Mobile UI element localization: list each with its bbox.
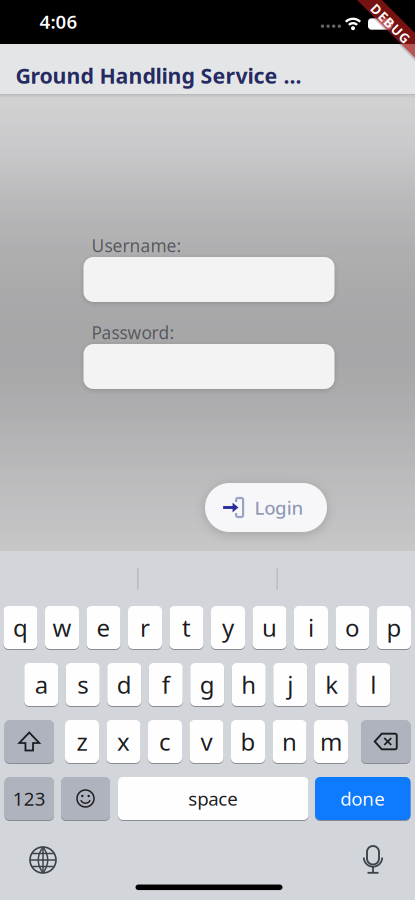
staticText: i bbox=[308, 612, 314, 643]
button[interactable]: i bbox=[294, 605, 328, 649]
button[interactable]: s bbox=[66, 662, 100, 706]
button[interactable]: o bbox=[335, 605, 369, 649]
staticText: v bbox=[200, 726, 212, 757]
button[interactable]: Emoji bbox=[61, 776, 110, 820]
staticText: Username: bbox=[91, 234, 181, 257]
staticText: e bbox=[96, 612, 110, 643]
staticText: y bbox=[222, 612, 234, 643]
staticText: D E B U G bbox=[365, 15, 415, 32]
staticText: w bbox=[52, 612, 71, 643]
button[interactable]: a bbox=[24, 662, 58, 706]
staticText: Password: bbox=[91, 321, 174, 344]
button[interactable]: f bbox=[149, 662, 183, 706]
staticText: u bbox=[262, 612, 277, 643]
staticText: b bbox=[240, 726, 255, 757]
staticText: c bbox=[159, 726, 171, 757]
button[interactable]: u bbox=[252, 605, 286, 649]
button[interactable]: d bbox=[107, 662, 141, 706]
staticText: g bbox=[200, 669, 215, 700]
button[interactable]: Delete bbox=[361, 719, 410, 763]
button[interactable]: z bbox=[65, 719, 99, 763]
staticText: Login bbox=[255, 495, 303, 520]
button[interactable]: g bbox=[190, 662, 224, 706]
staticText: l bbox=[370, 669, 376, 700]
button[interactable]: 123 bbox=[4, 776, 54, 820]
staticText: s bbox=[77, 669, 88, 700]
staticText: done bbox=[340, 786, 385, 811]
staticText: q bbox=[13, 612, 28, 643]
button[interactable]: Dictation bbox=[363, 845, 383, 874]
button[interactable]: x bbox=[106, 719, 140, 763]
button[interactable]: l bbox=[356, 662, 390, 706]
button[interactable]: p bbox=[377, 605, 411, 649]
button[interactable]: Username bbox=[83, 257, 334, 302]
staticText: x bbox=[117, 726, 130, 757]
button[interactable]: k bbox=[315, 662, 349, 706]
button[interactable]: Shift bbox=[4, 719, 54, 763]
staticText: 4:06 bbox=[39, 9, 77, 34]
button[interactable]: c bbox=[148, 719, 182, 763]
button[interactable]: Password bbox=[83, 344, 334, 389]
button[interactable]: h bbox=[232, 662, 266, 706]
button[interactable]: m bbox=[314, 719, 348, 763]
button[interactable]: n bbox=[272, 719, 306, 763]
staticText: o bbox=[345, 612, 360, 643]
button[interactable]: j bbox=[273, 662, 307, 706]
button[interactable]: b bbox=[231, 719, 265, 763]
staticText: t bbox=[182, 612, 191, 643]
button[interactable]: w bbox=[45, 605, 79, 649]
staticText: a bbox=[35, 669, 48, 700]
staticText: f bbox=[162, 669, 170, 700]
button[interactable]: Login bbox=[205, 483, 327, 532]
button[interactable]: Next keyboard bbox=[29, 846, 57, 874]
staticText: space bbox=[188, 786, 238, 811]
button[interactable]: y bbox=[211, 605, 245, 649]
button[interactable]: e bbox=[86, 605, 120, 649]
staticText: h bbox=[241, 669, 256, 700]
button[interactable]: space bbox=[118, 776, 308, 820]
staticText: p bbox=[386, 612, 401, 643]
staticText: 123 bbox=[13, 786, 46, 811]
button[interactable]: done bbox=[315, 776, 410, 820]
staticText: r bbox=[140, 612, 150, 643]
staticText: Ground Handling Service ... bbox=[15, 61, 301, 90]
staticText: j bbox=[287, 669, 293, 700]
button[interactable]: r bbox=[128, 605, 162, 649]
button[interactable]: q bbox=[3, 605, 37, 649]
button[interactable]: v bbox=[189, 719, 223, 763]
button[interactable]: t bbox=[169, 605, 203, 649]
staticText: k bbox=[325, 669, 338, 700]
staticText: z bbox=[76, 726, 87, 757]
staticText: d bbox=[117, 669, 132, 700]
staticText: n bbox=[282, 726, 297, 757]
staticText: m bbox=[320, 726, 342, 757]
